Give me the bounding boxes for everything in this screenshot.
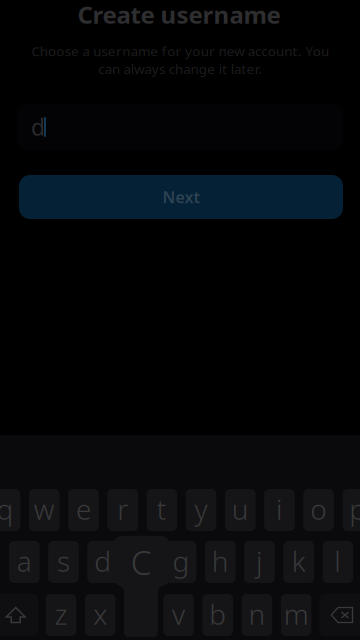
button[interactable]: Delete bbox=[319, 594, 360, 636]
staticText: w bbox=[34, 490, 55, 528]
button[interactable]: g bbox=[166, 541, 196, 583]
button[interactable]: e bbox=[68, 489, 99, 531]
button[interactable]: p bbox=[343, 489, 360, 531]
staticText: Create username bbox=[77, 0, 280, 30]
button[interactable]: y bbox=[186, 489, 216, 531]
button[interactable]: v bbox=[163, 594, 194, 636]
button[interactable]: l bbox=[323, 541, 353, 583]
staticText: n bbox=[248, 595, 265, 633]
button[interactable]: a bbox=[9, 541, 39, 583]
staticText: g bbox=[173, 542, 190, 580]
button[interactable]: Next bbox=[19, 175, 343, 219]
staticText: e bbox=[76, 490, 91, 528]
staticText: i bbox=[276, 490, 283, 528]
button[interactable]: w bbox=[29, 489, 59, 531]
staticText: C bbox=[131, 540, 152, 584]
staticText: d bbox=[94, 542, 111, 580]
staticText: q bbox=[0, 490, 14, 528]
staticText: r bbox=[117, 490, 128, 528]
staticText: t bbox=[157, 490, 167, 528]
button[interactable]: f bbox=[127, 541, 157, 583]
staticText: u bbox=[232, 490, 249, 528]
staticText: l bbox=[334, 542, 341, 580]
button[interactable]: q bbox=[0, 489, 20, 531]
button[interactable]: t bbox=[147, 489, 177, 531]
staticText: z bbox=[54, 595, 67, 633]
button[interactable]: s bbox=[48, 541, 79, 583]
button[interactable]: h bbox=[205, 541, 235, 583]
button[interactable]: z bbox=[46, 594, 76, 636]
staticText: f bbox=[137, 542, 146, 580]
button[interactable]: Shift bbox=[0, 594, 38, 636]
button[interactable]: b bbox=[202, 594, 233, 636]
staticText: d bbox=[31, 112, 45, 142]
button[interactable]: d bbox=[87, 541, 118, 583]
staticText: x bbox=[93, 595, 107, 633]
staticText: o bbox=[310, 490, 327, 528]
staticText: v bbox=[172, 595, 185, 633]
staticText: y bbox=[195, 490, 208, 528]
staticText: b bbox=[209, 595, 226, 633]
staticText: j bbox=[256, 542, 263, 580]
button[interactable]: i bbox=[264, 489, 295, 531]
button[interactable]: j bbox=[244, 541, 275, 583]
button[interactable]: o bbox=[303, 489, 334, 531]
staticText: s bbox=[57, 542, 70, 580]
button[interactable]: k bbox=[283, 541, 314, 583]
staticText: Next bbox=[162, 186, 199, 208]
staticText: Choose a username for your new account. … bbox=[31, 42, 329, 78]
button[interactable]: x bbox=[85, 594, 115, 636]
staticText: a bbox=[17, 542, 32, 580]
staticText: m bbox=[284, 595, 309, 633]
button[interactable]: n bbox=[242, 594, 272, 636]
button[interactable]: m bbox=[281, 594, 311, 636]
staticText: h bbox=[212, 542, 229, 580]
button[interactable]: u bbox=[225, 489, 255, 531]
button[interactable]: r bbox=[107, 489, 138, 531]
staticText: k bbox=[292, 542, 306, 580]
staticText: p bbox=[349, 490, 360, 528]
